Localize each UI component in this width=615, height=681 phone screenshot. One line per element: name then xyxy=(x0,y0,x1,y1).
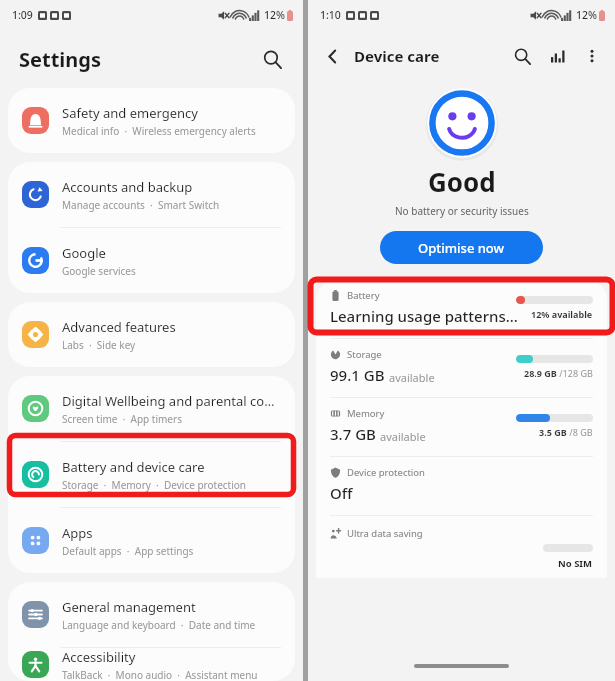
button[interactable]: Search xyxy=(507,41,537,71)
button[interactable]: Accounts and backup xyxy=(8,162,295,227)
button[interactable]: Battery and device care xyxy=(8,442,295,507)
staticText: No battery or security issues xyxy=(395,204,529,218)
button[interactable]: Apps xyxy=(8,508,295,573)
staticText: Accessibility xyxy=(62,648,136,666)
staticText: Good xyxy=(428,164,496,199)
staticText: Language and keyboard · Date and time xyxy=(62,618,256,632)
staticText: Settings xyxy=(19,46,101,73)
staticText: Google services xyxy=(62,264,136,278)
staticText: Safety and emergency xyxy=(62,104,198,122)
staticText: Storage xyxy=(347,348,382,361)
staticText: available xyxy=(389,370,435,385)
staticText: Advanced features xyxy=(62,318,176,336)
button[interactable]: Digital Wellbeing and parental controls xyxy=(8,376,295,441)
staticText: 3.5 GB xyxy=(539,426,567,438)
staticText: Battery and device care xyxy=(62,458,205,476)
staticText: Learning usage patterns... xyxy=(330,306,518,326)
staticText: 12% available xyxy=(531,308,593,320)
button[interactable]: Ultra data saving xyxy=(316,516,607,578)
staticText: Manage accounts · Smart Switch xyxy=(62,198,220,212)
staticText: Screen time · App timers xyxy=(62,412,182,426)
button[interactable]: Memory xyxy=(316,398,607,456)
staticText: Google xyxy=(62,244,106,262)
button[interactable]: Google xyxy=(8,228,295,293)
staticText: Storage · Memory · Device protection xyxy=(62,478,247,492)
staticText: 12% xyxy=(576,8,597,22)
button[interactable]: Storage xyxy=(316,339,607,397)
staticText: 1:09 xyxy=(12,8,33,22)
staticText: Memory xyxy=(347,407,385,420)
button[interactable]: Device protection xyxy=(316,457,607,515)
staticText: No SIM xyxy=(558,557,593,570)
staticText: 3.7 GB xyxy=(330,424,376,444)
staticText: Apps xyxy=(62,524,93,542)
staticText: Device care xyxy=(354,46,440,66)
button[interactable]: Search xyxy=(257,44,287,74)
staticText: /128 GB xyxy=(557,367,593,379)
staticText: Default apps · App settings xyxy=(62,544,194,558)
staticText: Optimise now xyxy=(418,239,505,257)
staticText: 99.1 GB xyxy=(330,365,385,385)
staticText: Device protection xyxy=(347,466,425,479)
staticText: Battery xyxy=(347,289,380,302)
staticText: 28.9 GB xyxy=(524,367,557,379)
staticText: /8 GB xyxy=(567,426,593,438)
staticText: Off xyxy=(330,483,353,503)
staticText: available xyxy=(380,429,426,444)
button[interactable]: Accessibility xyxy=(8,648,295,681)
staticText: Labs · Side key xyxy=(62,338,136,352)
staticText: Ultra data saving xyxy=(347,527,423,540)
button[interactable]: General management xyxy=(8,582,295,647)
button[interactable]: Safety and emergency xyxy=(8,88,295,153)
staticText: 1:10 xyxy=(320,8,341,22)
button[interactable]: Advanced features xyxy=(8,302,295,367)
button[interactable]: Battery xyxy=(316,280,607,338)
staticText: Digital Wellbeing and parental controls xyxy=(62,392,281,410)
staticText: TalkBack · Mono audio · Assistant menu xyxy=(62,668,258,681)
button[interactable]: Back xyxy=(316,40,348,72)
staticText: 12% xyxy=(264,8,285,22)
staticText: Accounts and backup xyxy=(62,178,193,196)
button[interactable]: Optimise now xyxy=(380,231,543,264)
staticText: Medical info · Wireless emergency alerts xyxy=(62,124,256,138)
button[interactable]: Usage statistics xyxy=(543,41,573,71)
button[interactable]: More options xyxy=(577,41,607,71)
staticText: General management xyxy=(62,598,196,616)
